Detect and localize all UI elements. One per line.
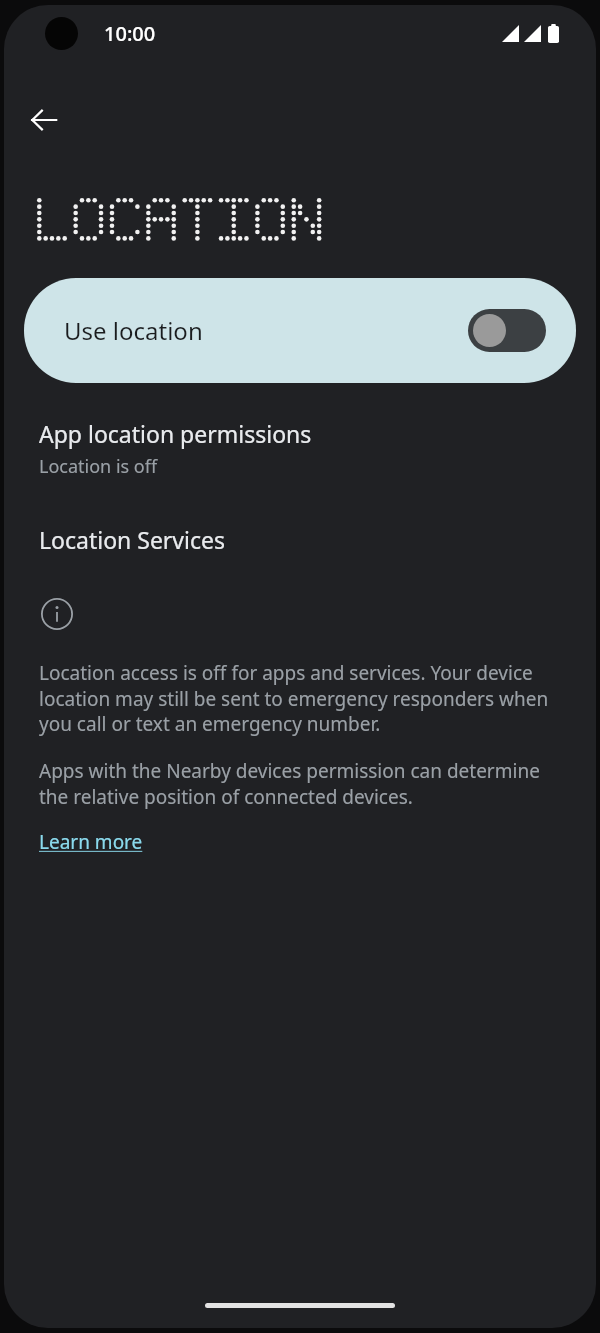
other: Use location toggle xyxy=(468,309,546,352)
staticText: Location Services xyxy=(39,524,226,555)
button[interactable]: Back xyxy=(18,94,70,146)
staticText: Apps with the Nearby devices permission … xyxy=(39,758,561,809)
staticText: App location permissions xyxy=(39,418,312,449)
button[interactable]: Location Services xyxy=(4,524,596,555)
button[interactable]: Use location xyxy=(24,278,576,383)
button[interactable]: App location permissions xyxy=(4,418,596,479)
staticText: Location is off xyxy=(39,454,158,479)
staticText: Location access is off for apps and serv… xyxy=(39,660,561,736)
staticText: Use location xyxy=(64,314,203,347)
button[interactable]: Learn more xyxy=(39,829,143,855)
staticText: 10:00 xyxy=(104,20,156,47)
staticText: Learn more xyxy=(39,829,143,855)
